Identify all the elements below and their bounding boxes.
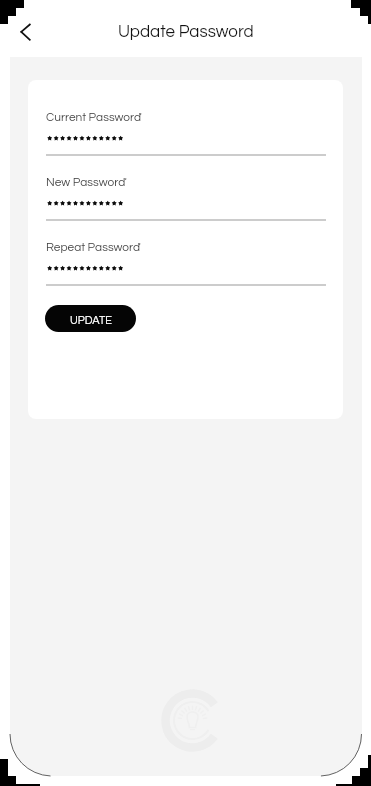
staticText: Current Password: [46, 111, 142, 123]
button[interactable]: Repeat Password: [46, 237, 326, 286]
button[interactable]: UPDATE: [45, 305, 136, 332]
staticText: *: [139, 111, 142, 119]
staticText: Update Password: [118, 23, 254, 41]
staticText: *: [138, 241, 141, 249]
staticText: UPDATE: [70, 315, 112, 326]
button[interactable]: Current Password: [46, 107, 326, 156]
staticText: New Password: [46, 176, 126, 188]
button[interactable]: Back: [10, 18, 34, 40]
staticText: *: [124, 176, 127, 184]
button[interactable]: New Password: [46, 172, 326, 221]
staticText: Repeat Password: [46, 241, 141, 253]
